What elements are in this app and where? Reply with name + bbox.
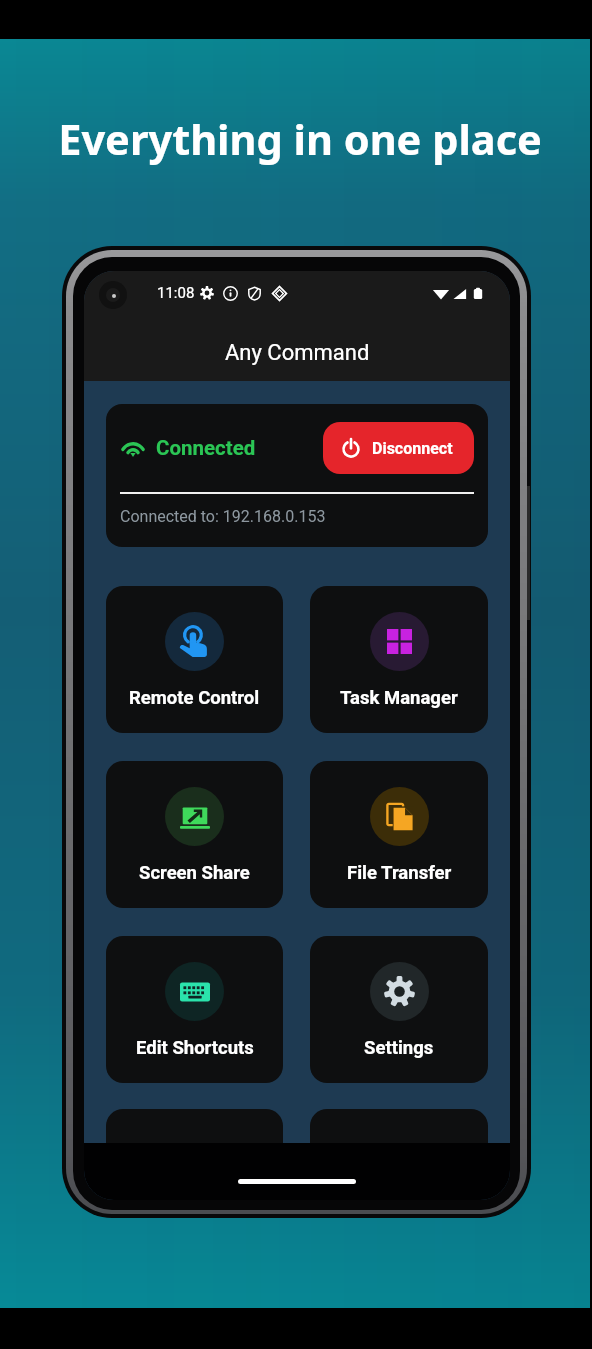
button[interactable]: Screen Share xyxy=(106,761,283,908)
staticText: 11:08 xyxy=(157,284,195,302)
staticText: Remote Control xyxy=(129,687,260,709)
button[interactable]: File Transfer xyxy=(310,761,488,908)
button[interactable]: Settings xyxy=(310,936,488,1083)
button[interactable]: Task Manager xyxy=(310,586,488,733)
staticText: Settings xyxy=(364,1037,434,1059)
staticText: Disconnect xyxy=(372,439,453,458)
staticText: Edit Shortcuts xyxy=(136,1037,254,1059)
staticText: Connected to: 192.168.0.153 xyxy=(120,507,326,526)
button[interactable] xyxy=(310,1109,488,1200)
staticText: Everything in one place xyxy=(5,111,592,168)
button[interactable]: Disconnect xyxy=(323,422,474,474)
button[interactable]: Remote Control xyxy=(106,586,283,733)
staticText: File Transfer xyxy=(347,862,452,884)
staticText: Any Command xyxy=(225,340,370,366)
button[interactable]: Edit Shortcuts xyxy=(106,936,283,1083)
staticText: Task Manager xyxy=(340,687,458,709)
staticText: Connected xyxy=(156,436,256,460)
button[interactable]: Connected xyxy=(106,404,488,547)
staticText: Screen Share xyxy=(139,862,250,884)
button[interactable] xyxy=(106,1109,283,1200)
